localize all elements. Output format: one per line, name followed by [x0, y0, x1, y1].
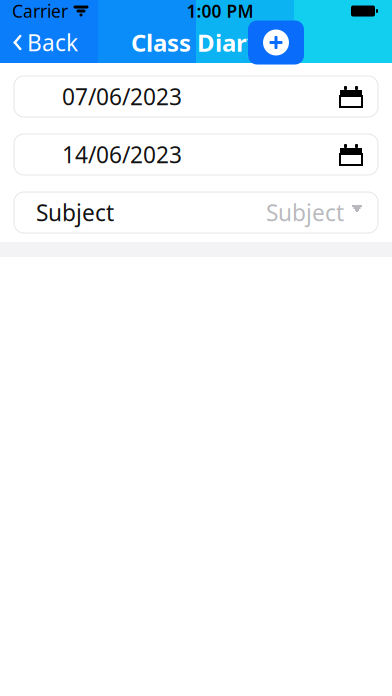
button[interactable]: 14/06/2023: [14, 134, 378, 175]
staticText: Subject: [266, 197, 344, 227]
staticText: 1:00 PM: [186, 0, 253, 22]
button[interactable]: 07/06/2023: [14, 76, 378, 117]
button[interactable]: Add: [248, 20, 304, 64]
button[interactable]: Back: [0, 22, 86, 63]
staticText: Class Diary: [131, 27, 261, 58]
staticText: Back: [27, 27, 78, 57]
button[interactable]: Subject: [14, 192, 378, 233]
staticText: Carrier: [12, 0, 68, 22]
staticText: 07/06/2023: [62, 81, 182, 111]
staticText: Subject: [36, 197, 114, 227]
staticText: 14/06/2023: [62, 139, 182, 169]
